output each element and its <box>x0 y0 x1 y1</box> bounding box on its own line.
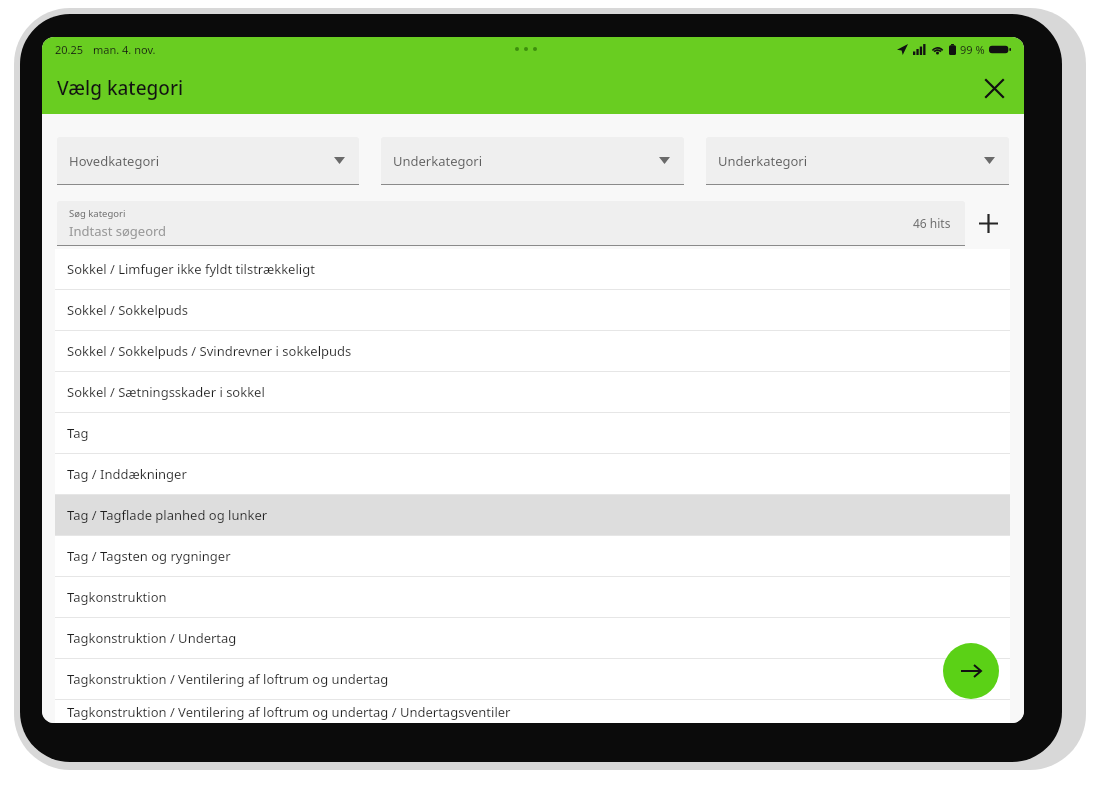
staticText: Tagkonstruktion <box>67 588 167 606</box>
staticText: Tagkonstruktion / Ventilering af loftrum… <box>67 703 511 721</box>
staticText: Tag / Tagsten og rygninger <box>67 547 231 565</box>
button[interactable]: Tagkonstruktion <box>55 577 1010 617</box>
button[interactable]: Luk <box>972 66 1016 110</box>
button[interactable]: Underkategori <box>381 137 684 185</box>
button[interactable]: Tag <box>55 413 1010 453</box>
staticText: Sokkel / Limfuger ikke fyldt tilstrækkel… <box>67 260 315 278</box>
button[interactable]: Næste <box>943 643 999 699</box>
staticText: 99 % <box>960 42 985 57</box>
button[interactable]: Sokkel / Sokkelpuds <box>55 290 1010 330</box>
staticText: Sokkel / Sokkelpuds / Svindrevner i sokk… <box>67 342 352 360</box>
staticText: Underkategori <box>393 152 483 170</box>
button[interactable]: Søg kategori <box>57 201 965 246</box>
button[interactable]: Tag / Tagsten og rygninger <box>55 536 1010 576</box>
staticText: Underkategori <box>718 152 808 170</box>
button[interactable]: Tag / Inddækninger <box>55 454 1010 494</box>
staticText: Indtast søgeord <box>69 222 167 240</box>
button[interactable]: Underkategori <box>706 137 1009 185</box>
staticText: Tag / Inddækninger <box>67 465 187 483</box>
staticText: 20.25 <box>55 42 84 57</box>
staticText: Vælg kategori <box>57 75 184 101</box>
staticText: 46 hits <box>913 215 951 231</box>
button[interactable]: Sokkel / Limfuger ikke fyldt tilstrækkel… <box>55 249 1010 289</box>
staticText: Sokkel / Sætningsskader i sokkel <box>67 383 265 401</box>
staticText: Tag / Tagflade planhed og lunker <box>67 506 268 524</box>
staticText: Hovedkategori <box>69 152 160 170</box>
button[interactable]: Sokkel / Sætningsskader i sokkel <box>55 372 1010 412</box>
button[interactable]: Tagkonstruktion / Undertag <box>55 618 1010 658</box>
staticText: Tagkonstruktion / Ventilering af loftrum… <box>67 670 389 688</box>
staticText: Tag <box>67 424 89 442</box>
staticText: Søg kategori <box>69 207 126 220</box>
button[interactable]: Hovedkategori <box>57 137 359 185</box>
button[interactable]: Sokkel / Sokkelpuds / Svindrevner i sokk… <box>55 331 1010 371</box>
button[interactable]: Tag / Tagflade planhed og lunker <box>55 495 1010 535</box>
staticText: Tagkonstruktion / Undertag <box>67 629 237 647</box>
button[interactable]: Tagkonstruktion / Ventilering af loftrum… <box>55 700 1010 723</box>
button[interactable]: Tilføj kategori <box>965 200 1011 246</box>
button[interactable]: Tagkonstruktion / Ventilering af loftrum… <box>55 659 1010 699</box>
staticText: man. 4. nov. <box>93 42 156 57</box>
staticText: Sokkel / Sokkelpuds <box>67 301 188 319</box>
